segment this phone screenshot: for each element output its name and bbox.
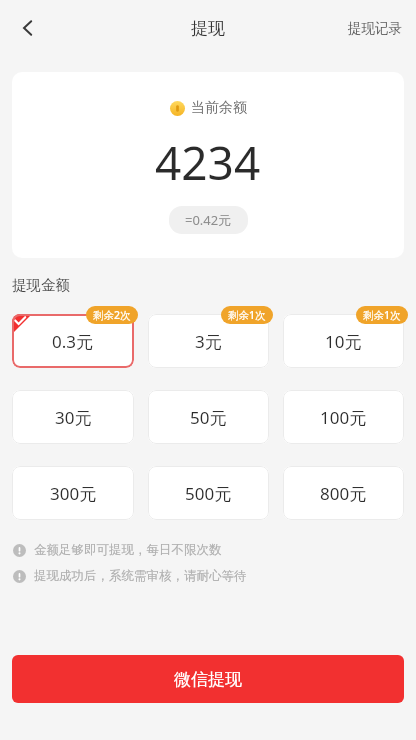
button[interactable]: 3元 <box>148 314 269 368</box>
staticText: 提现记录 <box>348 20 402 37</box>
button[interactable]: 30元 <box>12 390 134 444</box>
staticText: =0.42元 <box>185 211 232 229</box>
button[interactable]: 50元 <box>148 390 269 444</box>
staticText: 10元 <box>325 330 362 353</box>
staticText: 剩余1次 <box>363 308 401 322</box>
staticText: 剩余2次 <box>93 308 131 322</box>
button[interactable]: 300元 <box>12 466 134 520</box>
staticText: 500元 <box>185 482 232 505</box>
staticText: 提现金额 <box>12 276 70 294</box>
button[interactable]: 100元 <box>283 390 404 444</box>
staticText: 800元 <box>320 482 367 505</box>
button[interactable]: 10元 <box>283 314 404 368</box>
button[interactable]: 提现记录 <box>334 10 416 47</box>
staticText: 3元 <box>195 330 222 353</box>
staticText: 0.3元 <box>52 330 94 353</box>
staticText: 金额足够即可提现，每日不限次数 <box>34 542 222 558</box>
button[interactable]: 0.3元 <box>12 314 134 368</box>
button[interactable]: Back <box>6 6 50 50</box>
button[interactable]: 500元 <box>148 466 269 520</box>
staticText: 50元 <box>190 406 227 429</box>
staticText: 微信提现 <box>174 669 242 690</box>
button[interactable]: 微信提现 <box>12 655 404 703</box>
staticText: 提现成功后，系统需审核，请耐心等待 <box>34 568 247 584</box>
staticText: 100元 <box>320 406 367 429</box>
staticText: 提现 <box>191 18 225 39</box>
staticText: 30元 <box>55 406 92 429</box>
staticText: 300元 <box>50 482 97 505</box>
staticText: 当前余额 <box>191 99 247 117</box>
staticText: 剩余1次 <box>228 308 266 322</box>
button[interactable]: 800元 <box>283 466 404 520</box>
staticText: 4234 <box>155 131 261 194</box>
